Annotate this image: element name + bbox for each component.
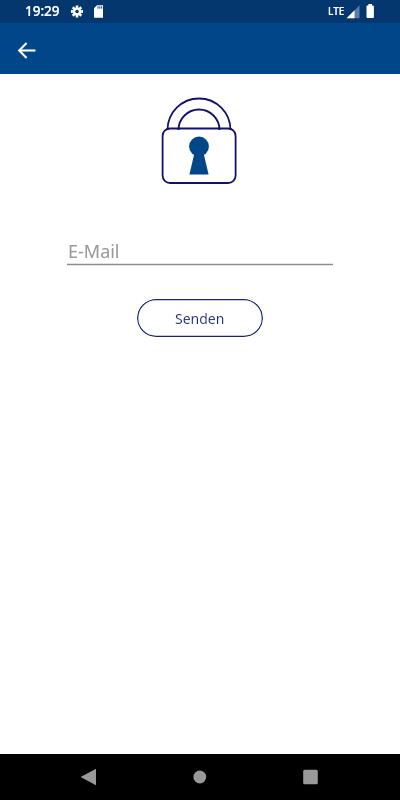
staticText: Senden bbox=[175, 309, 225, 328]
staticText: 19:29 bbox=[25, 2, 60, 20]
button[interactable]: Senden bbox=[137, 299, 263, 337]
button[interactable]: E-Mail bbox=[67, 239, 333, 271]
button[interactable]: Back bbox=[65, 754, 115, 800]
staticText: E-Mail bbox=[68, 239, 120, 264]
button[interactable]: Recents bbox=[286, 754, 336, 800]
staticText: LTE bbox=[328, 4, 345, 18]
button[interactable]: Back bbox=[3, 25, 51, 73]
button[interactable]: Home bbox=[175, 754, 225, 800]
